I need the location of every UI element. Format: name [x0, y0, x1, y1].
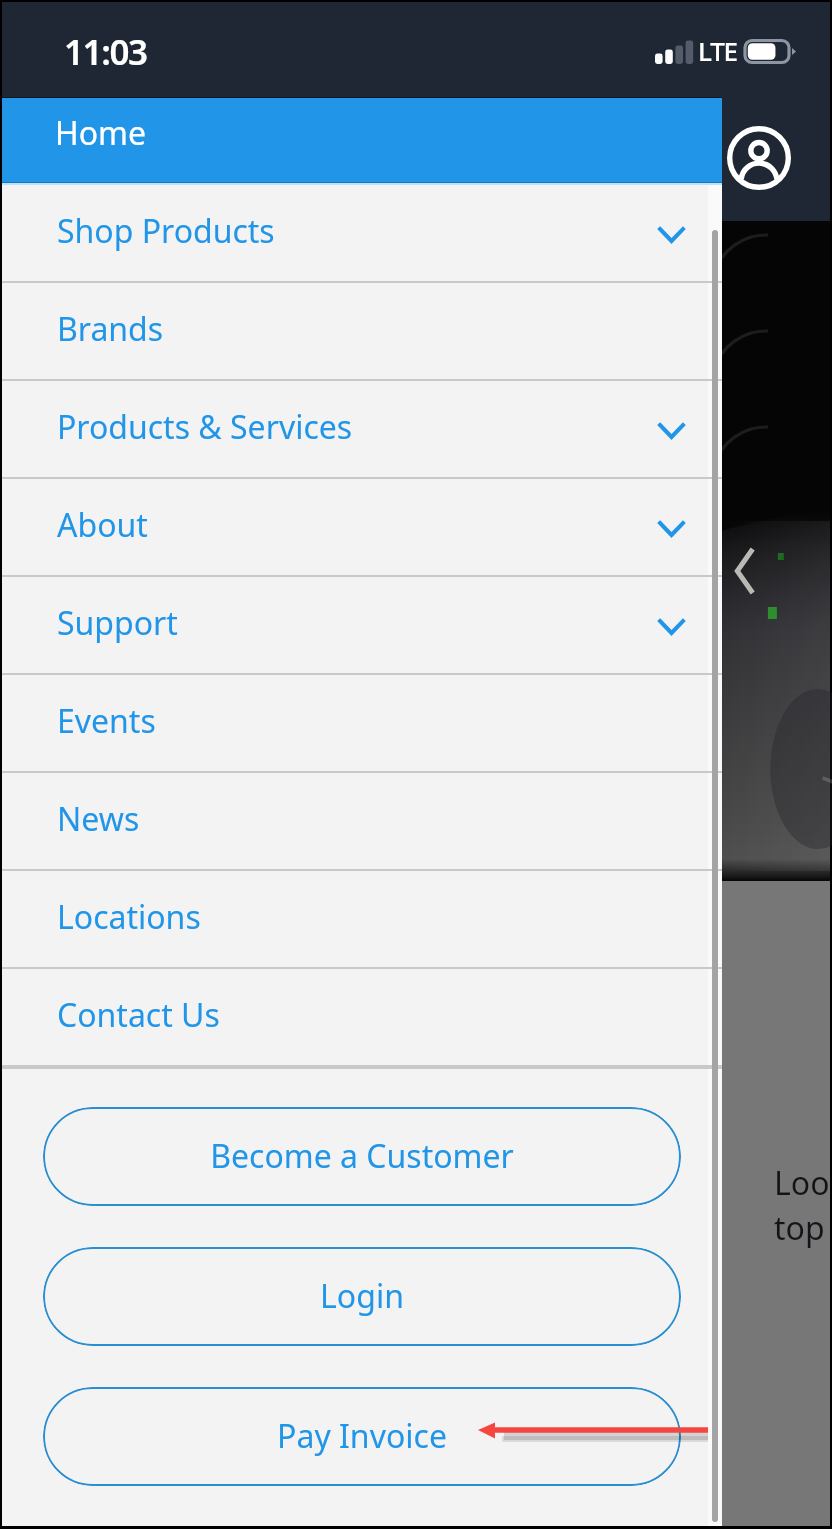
staticText: Events: [57, 699, 156, 743]
staticText: 11:03: [64, 28, 147, 76]
staticText: Contact Us: [57, 993, 220, 1037]
button[interactable]: Locations: [2, 871, 722, 969]
staticText: Support: [57, 601, 178, 645]
staticText: LTE: [698, 33, 737, 68]
staticText: Products & Services: [57, 405, 353, 449]
staticText: Shop Products: [57, 209, 275, 253]
staticText: Brands: [57, 307, 164, 351]
button[interactable]: Support: [2, 577, 722, 675]
button[interactable]: About: [2, 479, 722, 577]
staticText: Pay Invoice: [277, 1414, 447, 1458]
staticText: About: [57, 503, 148, 547]
button[interactable]: Pay Invoice: [43, 1387, 681, 1486]
button[interactable]: Products & Services: [2, 381, 722, 479]
staticText: Loo top: [774, 1161, 830, 1250]
button[interactable]: Login: [43, 1247, 681, 1346]
button[interactable]: Become a Customer: [43, 1107, 681, 1206]
button[interactable]: Account: [725, 124, 793, 192]
button[interactable]: News: [2, 773, 722, 871]
staticText: Become a Customer: [210, 1134, 514, 1178]
staticText: Locations: [57, 895, 201, 939]
button[interactable]: Home: [2, 98, 722, 182]
button[interactable]: Events: [2, 675, 722, 773]
staticText: News: [57, 797, 140, 841]
button[interactable]: Contact Us: [2, 969, 722, 1067]
staticText: Home: [55, 111, 147, 155]
button[interactable]: Shop Products: [2, 185, 722, 283]
button[interactable]: Brands: [2, 283, 722, 381]
staticText: Login: [320, 1274, 404, 1318]
